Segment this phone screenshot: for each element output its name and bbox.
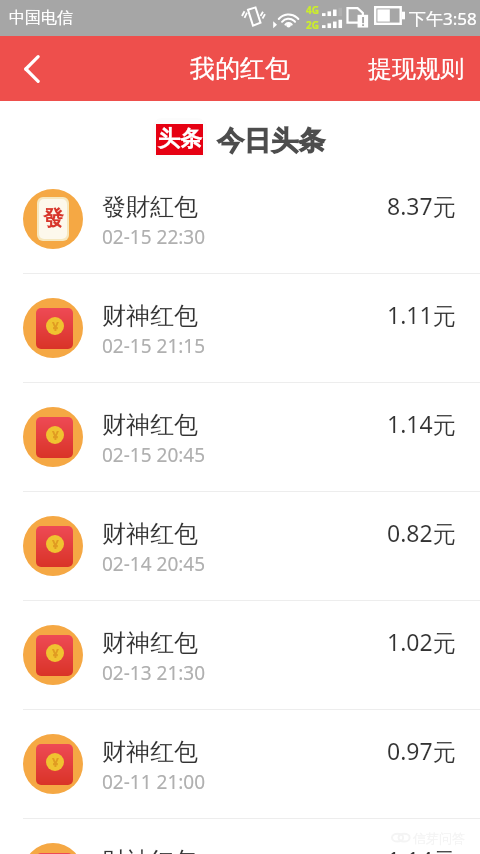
button[interactable]: ¥ bbox=[0, 383, 480, 491]
staticText: 头条 bbox=[158, 125, 202, 153]
staticText: 02-15 22:30 bbox=[102, 224, 206, 250]
staticText: 提现规则 bbox=[368, 54, 464, 84]
button[interactable]: Back bbox=[0, 36, 64, 101]
staticText: ¥ bbox=[52, 645, 59, 661]
staticText: 1.14元 bbox=[387, 844, 456, 854]
staticText: 4G bbox=[306, 3, 319, 17]
staticText: 下午3:58 bbox=[409, 7, 477, 30]
staticText: 02-15 21:15 bbox=[102, 333, 206, 359]
staticText: 财神红包 bbox=[102, 846, 198, 854]
staticText: 中国电信 bbox=[9, 8, 73, 28]
staticText: 1.11元 bbox=[387, 299, 456, 330]
staticText: 今日头条 bbox=[217, 124, 325, 158]
staticText: 财神红包 bbox=[102, 519, 198, 549]
staticText: 02-13 21:30 bbox=[102, 660, 206, 686]
staticText: 信芽问答 bbox=[413, 830, 465, 846]
staticText: ¥ bbox=[52, 754, 59, 770]
staticText: 财神红包 bbox=[102, 628, 198, 658]
staticText: 1.02元 bbox=[387, 626, 456, 657]
staticText: 财神红包 bbox=[102, 410, 198, 440]
button[interactable]: ¥ bbox=[0, 819, 480, 854]
staticText: 2G bbox=[306, 18, 319, 29]
staticText: 0.97元 bbox=[387, 735, 456, 766]
button[interactable]: 發 bbox=[0, 165, 480, 273]
staticText: ¥ bbox=[52, 318, 59, 334]
staticText: 02-15 20:45 bbox=[102, 442, 206, 468]
staticText: 發財紅包 bbox=[102, 192, 198, 222]
button[interactable]: ¥ bbox=[0, 601, 480, 709]
button[interactable]: ¥ bbox=[0, 710, 480, 818]
staticText: 1.14元 bbox=[387, 408, 456, 439]
button[interactable]: 提现规则 bbox=[352, 36, 480, 101]
button[interactable]: ¥ bbox=[0, 274, 480, 382]
staticText: 02-11 21:00 bbox=[102, 769, 206, 795]
button[interactable]: ¥ bbox=[0, 492, 480, 600]
staticText: 02-14 20:45 bbox=[102, 551, 206, 577]
staticText: 發 bbox=[43, 205, 64, 231]
staticText: 财神红包 bbox=[102, 301, 198, 331]
staticText: 财神红包 bbox=[102, 737, 198, 767]
staticText: 我的红包 bbox=[190, 53, 290, 84]
staticText: ¥ bbox=[52, 536, 59, 552]
staticText: 8.37元 bbox=[387, 190, 456, 221]
staticText: ¥ bbox=[52, 427, 59, 443]
staticText: 0.82元 bbox=[387, 517, 456, 548]
